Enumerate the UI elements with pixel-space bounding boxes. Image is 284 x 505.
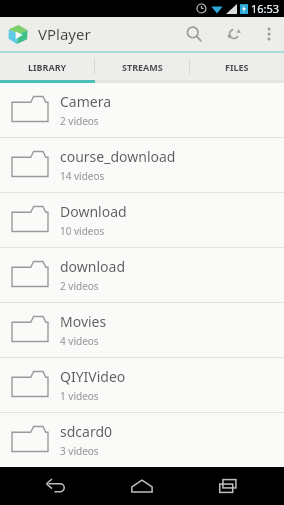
staticText: course_download xyxy=(60,147,176,166)
button[interactable]: Back xyxy=(26,467,86,505)
button[interactable]: QIYIVideo xyxy=(0,358,284,412)
staticText: sdcard0 xyxy=(60,422,113,441)
staticText: 3 videos xyxy=(60,444,99,458)
button[interactable]: Movies xyxy=(0,303,284,357)
button[interactable]: FILES xyxy=(190,53,284,80)
button[interactable]: STREAMS xyxy=(95,53,189,80)
button[interactable]: download xyxy=(0,248,284,302)
button[interactable]: Download xyxy=(0,193,284,247)
button[interactable]: More options xyxy=(254,17,284,51)
staticText: FILES xyxy=(225,61,249,73)
button[interactable]: Home xyxy=(112,467,172,505)
staticText: LIBRARY xyxy=(28,61,67,73)
staticText: download xyxy=(60,257,126,276)
staticText: 4 videos xyxy=(60,334,99,348)
staticText: 1 videos xyxy=(60,389,99,403)
button[interactable]: Camera xyxy=(0,83,284,137)
staticText: Movies xyxy=(60,312,107,331)
staticText: VPlayer xyxy=(38,24,91,44)
staticText: 16:53 xyxy=(251,1,280,16)
button[interactable]: sdcard0 xyxy=(0,413,284,467)
button[interactable]: Recent apps xyxy=(198,467,258,505)
staticText: 10 videos xyxy=(60,224,105,238)
staticText: 14 videos xyxy=(60,169,105,183)
staticText: Download xyxy=(60,202,127,221)
staticText: Camera xyxy=(60,92,112,111)
button[interactable]: course_download xyxy=(0,138,284,192)
button[interactable]: Search xyxy=(174,17,214,51)
staticText: 2 videos xyxy=(60,279,99,293)
staticText: STREAMS xyxy=(122,61,163,73)
button[interactable]: LIBRARY xyxy=(0,53,94,80)
staticText: 2 videos xyxy=(60,114,99,128)
button[interactable]: Refresh xyxy=(214,17,254,51)
staticText: QIYIVideo xyxy=(60,367,126,386)
